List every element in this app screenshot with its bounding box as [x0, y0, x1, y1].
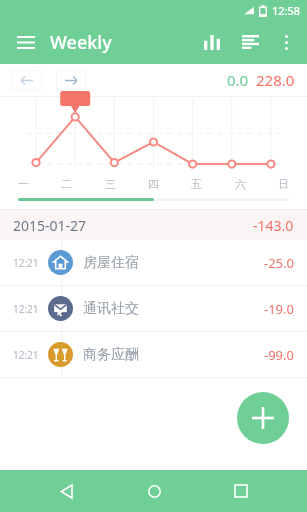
- button[interactable]: 12:21: [0, 286, 307, 331]
- staticText: 二: [61, 177, 72, 191]
- button[interactable]: 2015-01-27: [0, 210, 307, 240]
- staticText: 2015-01-27: [13, 216, 87, 235]
- button[interactable]: Previous week: [12, 70, 42, 91]
- staticText: 12:58: [272, 3, 301, 18]
- button[interactable]: Add transaction: [237, 392, 289, 444]
- button[interactable]: 12:21: [0, 332, 307, 377]
- staticText: 六: [235, 177, 246, 191]
- button[interactable]: Open navigation menu: [8, 24, 44, 60]
- staticText: 0.0: [227, 70, 249, 90]
- staticText: 一: [18, 177, 29, 191]
- staticText: Weekly: [50, 30, 112, 55]
- button[interactable]: Next week: [56, 70, 86, 91]
- staticText: 三: [105, 177, 116, 191]
- staticText: 12:21: [13, 302, 43, 316]
- button[interactable]: Home: [133, 470, 175, 512]
- button[interactable]: Chart view: [193, 23, 231, 61]
- staticText: -19.0: [264, 300, 294, 318]
- staticText: 商务应酬: [83, 346, 139, 364]
- staticText: 通讯社交: [83, 300, 139, 318]
- staticText: 房屋住宿: [83, 254, 139, 272]
- button[interactable]: Recent apps: [220, 470, 262, 512]
- button[interactable]: Sort list: [231, 23, 269, 61]
- button[interactable]: 12:21: [0, 240, 307, 285]
- staticText: 12:21: [13, 256, 43, 270]
- button[interactable]: More options: [269, 25, 303, 59]
- staticText: 四: [148, 177, 159, 191]
- staticText: 日: [278, 177, 289, 191]
- staticText: 五: [191, 177, 202, 191]
- button[interactable]: Back: [45, 470, 87, 512]
- staticText: -143.0: [253, 216, 294, 235]
- staticText: 12:21: [13, 348, 43, 362]
- staticText: -25.0: [264, 254, 294, 272]
- staticText: -99.0: [264, 346, 294, 364]
- staticText: 228.0: [256, 70, 295, 90]
